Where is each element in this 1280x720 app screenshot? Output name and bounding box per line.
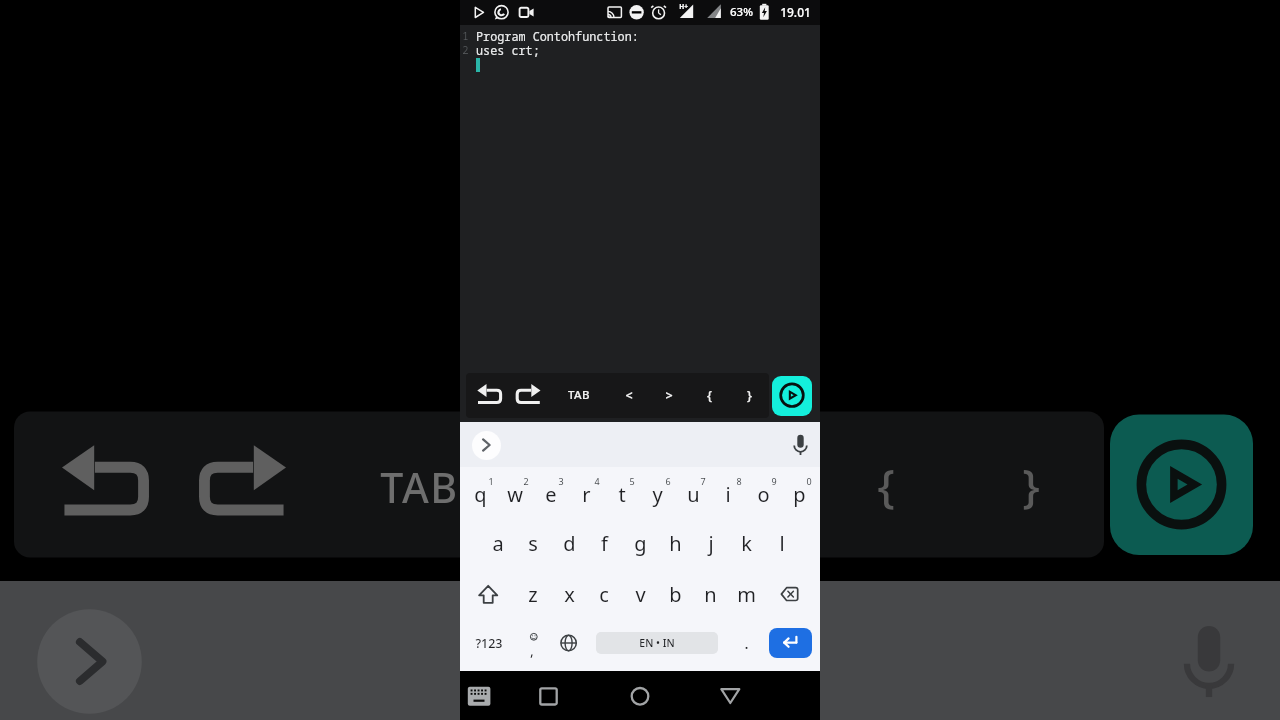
staticText: m — [737, 581, 756, 608]
staticText: > — [665, 387, 673, 404]
staticText: 9 — [771, 475, 777, 487]
staticText: 7 — [700, 475, 706, 487]
staticText: EN • IN — [639, 636, 675, 650]
staticText: u — [687, 481, 700, 508]
staticText: z — [528, 581, 538, 608]
staticText: 5 — [629, 475, 635, 487]
button[interactable]: d — [551, 520, 587, 566]
button[interactable]: u — [675, 471, 711, 517]
button[interactable]: m — [728, 571, 764, 617]
staticText: o — [757, 481, 770, 508]
staticText: g — [634, 530, 647, 557]
staticText: 63% — [730, 4, 753, 20]
button[interactable]: . — [734, 630, 758, 656]
staticText: b — [669, 581, 682, 608]
staticText: . — [744, 633, 749, 653]
staticText: , — [530, 641, 534, 660]
staticText: w — [507, 481, 523, 508]
staticText: j — [708, 530, 714, 557]
staticText: p — [793, 481, 806, 508]
staticText: r — [582, 481, 591, 508]
staticText: 0 — [806, 475, 812, 487]
button[interactable]: t — [604, 471, 640, 517]
button[interactable] — [515, 382, 541, 408]
button[interactable]: < — [612, 380, 646, 410]
button[interactable]: p — [781, 471, 817, 517]
button[interactable]: a — [480, 520, 516, 566]
staticText: ?123 — [475, 635, 503, 652]
button[interactable]: } — [732, 380, 766, 410]
button[interactable]: y — [639, 471, 675, 517]
button[interactable]: q — [462, 471, 498, 517]
staticText: x — [564, 581, 575, 608]
button[interactable]: ?123 — [466, 626, 512, 660]
button[interactable] — [787, 431, 814, 458]
button[interactable]: l — [764, 520, 800, 566]
button[interactable]: i — [710, 471, 746, 517]
button[interactable]: h — [657, 520, 693, 566]
staticText: 19.01 — [780, 4, 811, 20]
button[interactable]: r — [568, 471, 604, 517]
staticText: q — [474, 481, 487, 508]
button[interactable]: f — [586, 520, 622, 566]
staticText: e — [545, 481, 557, 508]
button[interactable] — [630, 686, 650, 706]
button[interactable]: g — [622, 520, 658, 566]
button[interactable]: v — [622, 571, 658, 617]
staticText: } — [747, 386, 752, 404]
button[interactable]: c — [586, 571, 622, 617]
staticText: a — [492, 530, 504, 557]
button[interactable] — [776, 580, 804, 608]
staticText: c — [599, 581, 609, 608]
staticText: y — [652, 481, 663, 508]
button[interactable]: e — [533, 471, 569, 517]
staticText: d — [563, 530, 576, 557]
staticText: 4 — [594, 475, 600, 487]
staticText: uses crt; — [476, 42, 540, 58]
staticText: k — [741, 530, 752, 557]
button[interactable]: > — [652, 380, 686, 410]
button[interactable]: b — [657, 571, 693, 617]
staticText: v — [635, 581, 646, 608]
button[interactable] — [555, 629, 582, 656]
staticText: 1 — [462, 29, 469, 43]
staticText: s — [528, 530, 538, 557]
staticText: 6 — [665, 475, 671, 487]
staticText: TAB — [380, 459, 459, 515]
button[interactable] — [476, 382, 502, 408]
button[interactable] — [472, 431, 501, 460]
button[interactable]: x — [551, 571, 587, 617]
button[interactable]: , — [520, 637, 544, 663]
staticText: h — [669, 530, 682, 557]
staticText: { — [707, 386, 712, 404]
button[interactable]: TAB — [549, 380, 609, 410]
staticText: 3 — [558, 475, 564, 487]
staticText: 8 — [736, 475, 742, 487]
button[interactable]: n — [692, 571, 728, 617]
staticText: n — [704, 581, 717, 608]
button[interactable]: o — [745, 471, 781, 517]
button[interactable]: z — [515, 571, 551, 617]
button[interactable] — [769, 628, 812, 658]
button[interactable]: s — [515, 520, 551, 566]
staticText: 1 — [488, 475, 494, 487]
button[interactable] — [466, 683, 492, 709]
staticText: < — [625, 387, 633, 404]
button[interactable] — [538, 686, 558, 706]
button[interactable]: { — [692, 380, 726, 410]
button[interactable] — [719, 687, 741, 706]
staticText: Program Contohfunction: — [476, 28, 639, 44]
staticText: i — [725, 481, 731, 508]
button[interactable] — [772, 376, 812, 416]
staticText: t — [618, 481, 626, 508]
button[interactable]: w — [497, 471, 533, 517]
button[interactable]: j — [693, 520, 729, 566]
staticText: 2 — [462, 43, 469, 57]
staticText: 2 — [523, 475, 529, 487]
button[interactable] — [596, 632, 718, 654]
staticText: l — [779, 530, 785, 557]
staticText: TAB — [568, 387, 590, 403]
button[interactable] — [474, 580, 502, 608]
button[interactable]: k — [728, 520, 764, 566]
staticText: H+ — [679, 2, 688, 11]
